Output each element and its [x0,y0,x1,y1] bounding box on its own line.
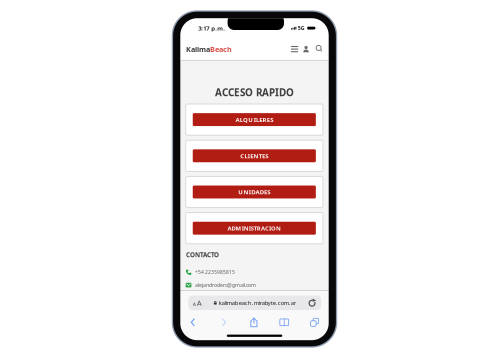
staticText: A [197,297,202,308]
button[interactable]: UNIDADES [186,176,323,208]
button[interactable]: Tabs [304,313,326,331]
staticText: +54 2235985815 [195,269,235,275]
button[interactable]: Page settings [188,295,206,310]
staticText: ACCESO RAPIDO [215,86,294,99]
staticText: ALQUILERES [235,115,273,124]
staticText: Beach [210,44,232,54]
staticText: kalimabeach.mirabyte.com.ar [219,299,296,307]
button[interactable]: Bookmarks [273,313,295,331]
staticText: ADMINISTRACION [227,224,281,232]
button[interactable]: ALQUILERES [186,104,323,135]
button[interactable]: Search [314,41,325,57]
button[interactable]: +54 2235985815 [186,268,235,277]
button[interactable]: Share [243,313,265,331]
button[interactable]: Menu [289,41,300,57]
staticText: CLIENTES [240,152,268,160]
button[interactable]: alejandroclerc@gmail.com [186,281,256,290]
button[interactable]: Forward [213,313,235,331]
staticText: Kalima [186,44,210,54]
button[interactable]: Back [182,313,204,331]
staticText: alejandroclerc@gmail.com [195,282,256,289]
staticText: 3:17 p.m. [198,24,225,32]
staticText: CONTACTO [186,250,219,259]
button[interactable]: Reload [303,295,321,310]
staticText: 5G [298,25,305,32]
staticText: UNIDADES [238,188,270,196]
button[interactable]: Account [300,41,312,57]
button[interactable]: ADMINISTRACION [186,213,323,244]
button[interactable]: CLIENTES [186,140,323,171]
staticText: A [193,300,197,308]
